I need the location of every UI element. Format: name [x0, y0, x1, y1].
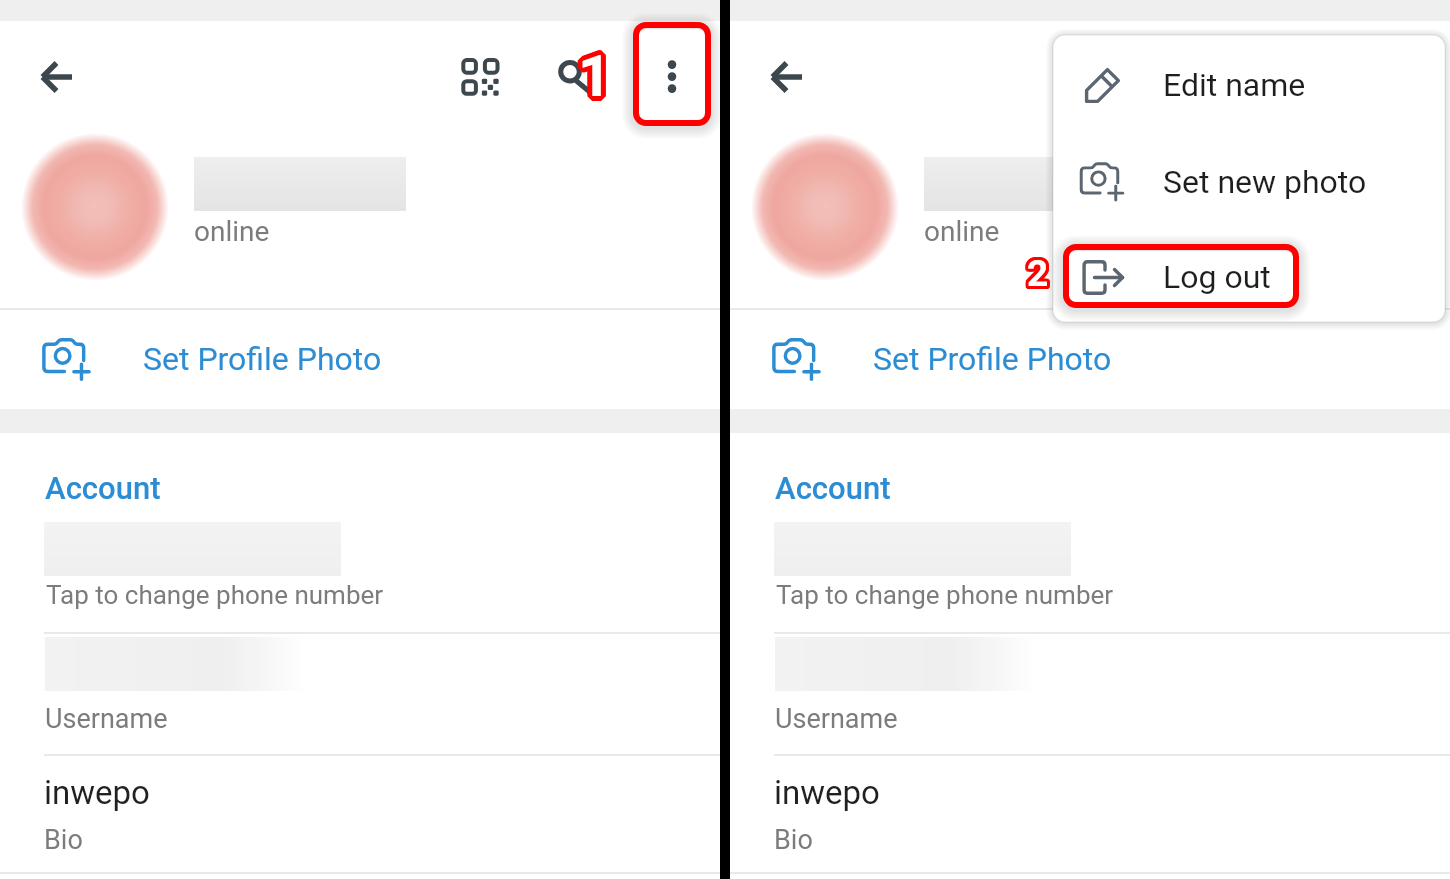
- button[interactable]: Username: [0, 634, 720, 754]
- button[interactable]: online: [730, 107, 1450, 308]
- staticText: 1: [575, 45, 609, 113]
- staticText: 2: [1024, 251, 1046, 294]
- staticText: 2: [1029, 255, 1051, 298]
- staticText: 2: [1027, 252, 1049, 295]
- button[interactable]: Set Profile Photo: [730, 308, 1450, 410]
- staticText: 1: [580, 38, 614, 106]
- staticText: 1: [578, 47, 612, 115]
- staticText: online: [924, 215, 1000, 248]
- staticText: 1: [574, 44, 608, 112]
- staticText: Account: [775, 470, 891, 506]
- staticText: Account: [45, 470, 161, 506]
- button[interactable]: Scan QR code: [452, 48, 508, 104]
- staticText: 2: [1030, 251, 1052, 294]
- staticText: Bio: [44, 824, 83, 856]
- staticText: 1: [583, 41, 617, 109]
- button[interactable]: Set new photo: [1053, 148, 1445, 216]
- staticText: inwepo: [44, 773, 150, 812]
- staticText: 1: [583, 43, 617, 111]
- staticText: 2: [1026, 249, 1048, 292]
- button[interactable]: Log out: [1053, 243, 1445, 311]
- staticText: 2: [1030, 252, 1052, 295]
- staticText: 1: [580, 46, 614, 114]
- staticText: 1: [576, 38, 610, 106]
- staticText: 2: [1024, 253, 1046, 296]
- staticText: 2: [1029, 249, 1051, 292]
- button[interactable]: online: [0, 107, 720, 308]
- staticText: 2: [1024, 252, 1046, 295]
- button[interactable]: More options: [644, 46, 700, 102]
- button[interactable]: Tap to change phone number: [0, 505, 720, 632]
- staticText: Tap to change phone number: [776, 580, 1114, 610]
- button[interactable]: Search: [546, 47, 602, 103]
- staticText: 2: [1025, 254, 1047, 297]
- button[interactable]: Username: [730, 634, 1450, 754]
- staticText: 1: [574, 40, 608, 108]
- button[interactable]: Back: [757, 48, 813, 104]
- staticText: 1: [582, 44, 616, 112]
- staticText: 2: [1029, 254, 1051, 297]
- staticText: 2: [1030, 254, 1052, 297]
- staticText: 2: [1027, 249, 1049, 292]
- button[interactable]: Back: [27, 48, 83, 104]
- staticText: 1: [579, 37, 613, 105]
- staticText: 1: [576, 46, 610, 114]
- staticText: 2: [1024, 250, 1046, 293]
- staticText: 2: [1028, 255, 1050, 298]
- staticText: 1: [578, 42, 612, 110]
- staticText: 1: [577, 47, 611, 115]
- staticText: 1: [581, 45, 615, 113]
- staticText: 1: [573, 41, 607, 109]
- button[interactable]: Tap to change phone number: [730, 505, 1450, 632]
- staticText: 1: [583, 42, 617, 110]
- button[interactable]: Edit name: [1053, 51, 1445, 119]
- staticText: 1: [577, 37, 611, 105]
- button[interactable]: inwepo: [0, 756, 720, 872]
- staticText: Username: [775, 703, 898, 735]
- staticText: 2: [1026, 255, 1048, 298]
- button[interactable]: inwepo: [730, 756, 1450, 872]
- staticText: 1: [578, 37, 612, 105]
- button[interactable]: Set Profile Photo: [0, 308, 720, 410]
- staticText: 2: [1030, 253, 1052, 296]
- staticText: 2: [1028, 249, 1050, 292]
- staticText: Tap to change phone number: [46, 580, 384, 610]
- staticText: online: [194, 215, 270, 248]
- staticText: 1: [581, 39, 615, 107]
- staticText: 2: [1027, 255, 1049, 298]
- staticText: Log out: [1163, 258, 1271, 296]
- staticText: Edit name: [1163, 66, 1306, 104]
- staticText: Bio: [774, 824, 813, 856]
- staticText: 2: [1025, 250, 1047, 293]
- staticText: Set Profile Photo: [143, 340, 382, 378]
- staticText: 2: [1025, 255, 1047, 298]
- staticText: 1: [573, 42, 607, 110]
- staticText: 1: [582, 40, 616, 108]
- staticText: Username: [45, 703, 168, 735]
- staticText: inwepo: [774, 773, 880, 812]
- staticText: Set new photo: [1163, 163, 1367, 201]
- staticText: 1: [573, 43, 607, 111]
- staticText: 1: [575, 39, 609, 107]
- staticText: 2: [1024, 254, 1046, 297]
- staticText: 2: [1030, 250, 1052, 293]
- staticText: 1: [579, 47, 613, 115]
- staticText: Set Profile Photo: [873, 340, 1112, 378]
- staticText: 2: [1029, 250, 1051, 293]
- staticText: 2: [1025, 249, 1047, 292]
